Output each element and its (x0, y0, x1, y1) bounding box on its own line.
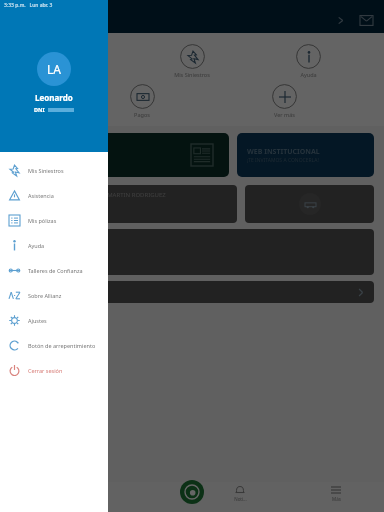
staticText: Sobre Allianz (28, 292, 62, 299)
staticText: Noti... (234, 496, 247, 502)
staticText: Combinado Familiar Ubicacion: MARTIN ROD… (18, 191, 166, 199)
staticText: Mis pólizas (28, 217, 57, 224)
button[interactable]: LA (37, 52, 71, 86)
staticText: Ver más (274, 111, 295, 118)
staticText: Ayuda (28, 242, 45, 249)
button[interactable]: Asistencia (0, 183, 108, 208)
staticText: Ajustes (28, 317, 47, 324)
button[interactable]: Más (288, 485, 384, 502)
staticText: Cerrar sesión (28, 367, 63, 374)
staticText: Ver más (20, 288, 43, 296)
button[interactable]: Ajustes (0, 308, 108, 333)
button[interactable] (245, 185, 374, 223)
button[interactable]: WhatsApp (180, 480, 204, 504)
staticText: Mis Siniestros (28, 167, 64, 174)
staticText: Mis pólizas (62, 71, 91, 78)
button[interactable]: Ayuda (268, 42, 348, 80)
staticText: Más (332, 496, 341, 502)
staticText: LA (47, 61, 61, 77)
staticText: Ayuda (300, 71, 317, 78)
button[interactable]: Sobre Allianz (0, 283, 108, 308)
staticText: Pagos (134, 111, 150, 118)
staticText: ¡TE INVITAMOS A CONOCERLA! (247, 157, 319, 164)
staticText: Talleres de Confianza (28, 267, 83, 274)
button[interactable]: Ver más (10, 281, 374, 303)
button[interactable]: Mail (356, 10, 376, 30)
button[interactable]: Ayuda (0, 233, 108, 258)
button[interactable]: Mis pólizas (0, 208, 108, 233)
button[interactable]: Mis Siniestros (0, 158, 108, 183)
button[interactable]: Noti... (192, 485, 288, 502)
staticText: DNI (34, 106, 45, 113)
staticText: Asistencia (28, 192, 54, 199)
button[interactable]: Mis Siniestros (152, 42, 232, 80)
button[interactable]: Pagos (102, 82, 182, 120)
staticText: Mis Siniestros (174, 71, 210, 78)
button[interactable] (10, 133, 229, 177)
button[interactable]: Talleres de Confianza (0, 258, 108, 283)
button[interactable]: Ver más (244, 82, 324, 120)
button[interactable]: Botón de arrepentimiento (0, 333, 108, 358)
staticText: ...963 - Endoso: 2 (20, 243, 68, 251)
staticText: 3:33 p.m. Lun abr. 3 (4, 2, 53, 9)
staticText: WEB INSTITUCIONAL (247, 147, 320, 157)
button[interactable]: Cerrar sesión (0, 358, 108, 383)
button[interactable]: WEB INSTITUCIONAL (237, 133, 374, 177)
button[interactable]: Next (330, 10, 350, 30)
button[interactable]: ...963 - Endoso: 2 (10, 229, 374, 275)
button[interactable]: Mis pólizas (36, 42, 116, 80)
button[interactable]: Combinado Familiar Ubicacion: MARTIN ROD… (10, 185, 237, 223)
staticText: Botón de arrepentimiento (28, 342, 96, 349)
staticText: Leonardo (35, 92, 73, 103)
